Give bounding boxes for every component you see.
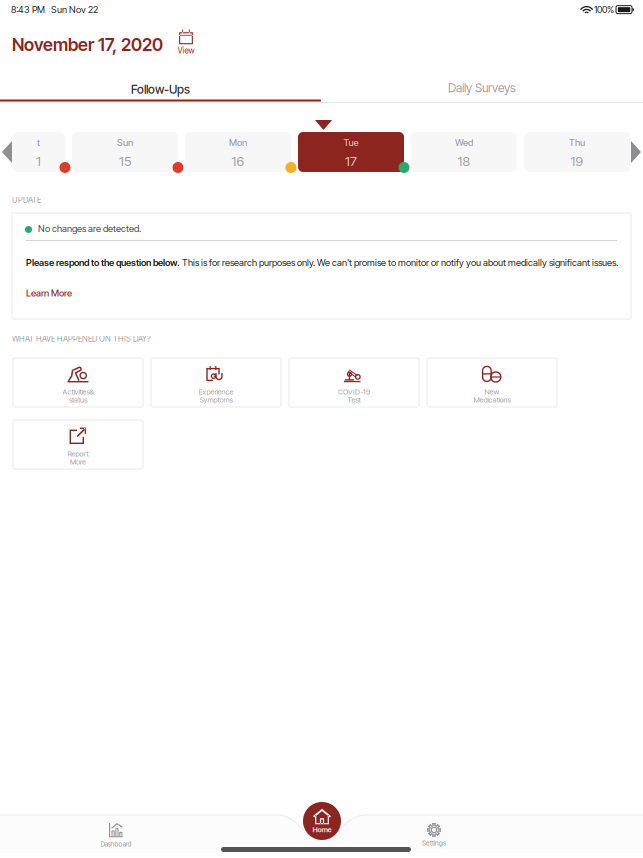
staticText: November 17, 2020 — [12, 34, 163, 55]
staticText: Follow-Ups — [131, 82, 190, 97]
staticText: Daily Surveys — [448, 81, 516, 95]
staticText: Mon — [229, 137, 247, 148]
staticText: 17 — [345, 153, 357, 169]
staticText: 18 — [457, 153, 470, 169]
staticText: View — [177, 46, 194, 55]
staticText: Symptoms — [199, 395, 232, 404]
staticText: Activities& — [62, 387, 93, 396]
staticText: Medications — [473, 395, 510, 404]
button[interactable]: View — [169, 28, 203, 56]
staticText: No changes are detected. — [38, 223, 141, 234]
staticText: Home — [312, 825, 331, 834]
staticText: Please respond to the question below. Th… — [26, 257, 618, 268]
button[interactable]: Mon — [185, 132, 291, 172]
button[interactable]: Report — [13, 420, 143, 469]
staticText: WHAT HAVE HAPPENED ON THIS DAY? — [12, 334, 151, 344]
staticText: Wed — [455, 137, 473, 148]
staticText: More — [70, 457, 86, 466]
staticText: COVID-19 — [338, 387, 370, 396]
staticText: New — [484, 387, 499, 396]
staticText: Thu — [569, 137, 585, 148]
staticText: UPDATE — [12, 195, 41, 205]
button[interactable]: Follow-Ups — [0, 76, 321, 103]
staticText: 16 — [231, 153, 244, 169]
staticText: 19 — [570, 153, 583, 169]
button[interactable]: Settings — [389, 821, 479, 849]
button[interactable]: Daily Surveys — [321, 76, 643, 100]
button[interactable]: Thu — [524, 132, 630, 172]
button[interactable]: Experience — [151, 358, 281, 407]
button[interactable]: t — [12, 132, 65, 172]
button[interactable]: Previous week — [2, 141, 12, 163]
button[interactable]: Learn More — [26, 287, 74, 299]
staticText: Tue — [343, 137, 358, 148]
button[interactable]: Home — [303, 802, 341, 840]
staticText: Dashboard — [100, 840, 131, 848]
staticText: Settings — [422, 839, 446, 847]
staticText: Learn More — [26, 287, 72, 299]
staticText: 8:43 PM Sun Nov 22 — [11, 4, 98, 15]
button[interactable]: Activities& — [13, 358, 143, 407]
staticText: 1 — [36, 153, 41, 169]
button[interactable]: Wed — [411, 132, 517, 172]
staticText: status — [69, 395, 87, 404]
staticText: 100% — [594, 4, 614, 15]
staticText: Experience — [198, 387, 233, 396]
staticText: Sun — [117, 137, 133, 148]
staticText: Report — [67, 449, 88, 458]
button[interactable]: Dashboard — [71, 821, 161, 849]
button[interactable]: COVID-19 — [289, 358, 419, 407]
button[interactable]: Sun — [72, 132, 178, 172]
button[interactable]: Tue — [298, 132, 404, 172]
button[interactable]: Next week — [631, 141, 641, 163]
button[interactable]: New — [427, 358, 557, 407]
staticText: 15 — [119, 153, 131, 169]
staticText: Test — [347, 395, 360, 404]
staticText: t — [37, 137, 40, 148]
